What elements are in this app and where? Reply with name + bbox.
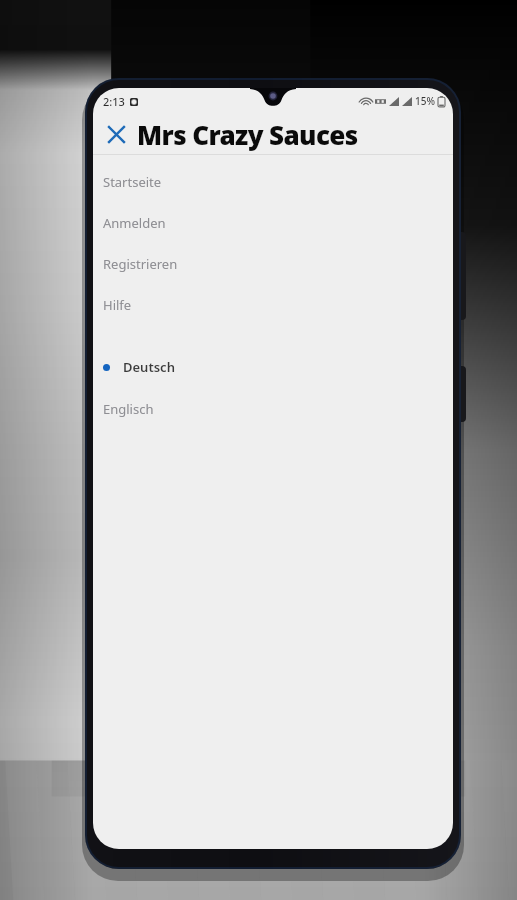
staticText: Deutsch bbox=[123, 358, 175, 376]
button[interactable]: Anmelden bbox=[93, 201, 453, 242]
staticText: Startseite bbox=[103, 173, 162, 191]
button[interactable]: Registrieren bbox=[93, 242, 453, 283]
staticText: Hilfe bbox=[103, 296, 132, 314]
button[interactable]: Hilfe bbox=[93, 283, 453, 324]
button[interactable]: Englisch bbox=[93, 394, 453, 424]
staticText: Englisch bbox=[103, 400, 154, 418]
staticText: Mrs Crazy Sauces bbox=[137, 117, 358, 152]
staticText: Registrieren bbox=[103, 255, 178, 273]
button[interactable]: Startseite bbox=[93, 163, 453, 201]
staticText: 2:13 bbox=[103, 94, 125, 109]
staticText: 15% bbox=[415, 94, 435, 108]
button[interactable]: Deutsch bbox=[93, 352, 453, 382]
staticText: Anmelden bbox=[103, 214, 166, 232]
button[interactable]: Close bbox=[99, 117, 133, 151]
